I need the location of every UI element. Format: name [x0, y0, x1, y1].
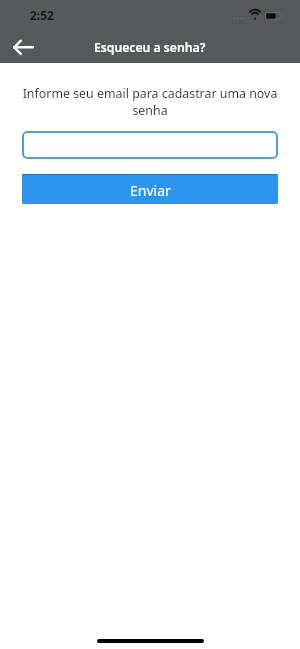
staticText: 2:52 — [30, 7, 54, 23]
button[interactable]: Back — [5, 28, 42, 63]
button[interactable]: Enviar — [22, 174, 278, 204]
staticText: Informe seu email para cadastrar uma nov… — [10, 85, 290, 119]
staticText: Enviar — [130, 181, 171, 200]
staticText: Esqueceu a senha? — [94, 39, 206, 56]
button[interactable]: Email — [22, 131, 278, 159]
